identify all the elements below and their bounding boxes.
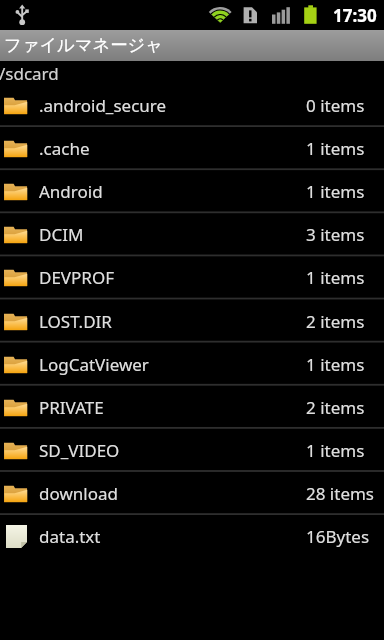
- staticText: 17:30: [333, 4, 377, 27]
- staticText: 3 items: [306, 223, 365, 246]
- staticText: 0 items: [306, 94, 365, 117]
- staticText: data.txt: [39, 525, 101, 548]
- button[interactable]: DEVPROF: [0, 255, 384, 298]
- staticText: LogCatViewer: [39, 353, 149, 376]
- staticText: SD_VIDEO: [39, 439, 120, 462]
- staticText: DEVPROF: [39, 266, 115, 289]
- staticText: 1 items: [306, 353, 365, 376]
- button[interactable]: SD_VIDEO: [0, 428, 384, 471]
- button[interactable]: Android: [0, 169, 384, 212]
- button[interactable]: download: [0, 471, 384, 514]
- button[interactable]: LOST.DIR: [0, 299, 384, 342]
- staticText: 1 items: [306, 266, 365, 289]
- button[interactable]: PRIVATE: [0, 385, 384, 428]
- staticText: DCIM: [39, 223, 84, 246]
- staticText: 1 items: [306, 180, 365, 203]
- staticText: 2 items: [306, 310, 365, 333]
- button[interactable]: .cache: [0, 126, 384, 169]
- staticText: 2 items: [306, 396, 365, 419]
- button[interactable]: .android_secure: [0, 83, 384, 126]
- staticText: .android_secure: [39, 94, 167, 117]
- button[interactable]: DCIM: [0, 212, 384, 255]
- staticText: download: [39, 482, 118, 505]
- staticText: LOST.DIR: [39, 310, 112, 333]
- staticText: 1 items: [306, 439, 365, 462]
- staticText: .cache: [39, 137, 90, 160]
- staticText: 28 items: [306, 482, 375, 505]
- staticText: /sdcard: [0, 62, 59, 84]
- staticText: 16Bytes: [306, 525, 370, 548]
- staticText: PRIVATE: [39, 396, 104, 419]
- staticText: ファイルマネージャ: [4, 34, 163, 56]
- button[interactable]: LogCatViewer: [0, 342, 384, 385]
- button[interactable]: data.txt: [0, 514, 384, 557]
- staticText: Android: [39, 180, 103, 203]
- staticText: 1 items: [306, 137, 365, 160]
